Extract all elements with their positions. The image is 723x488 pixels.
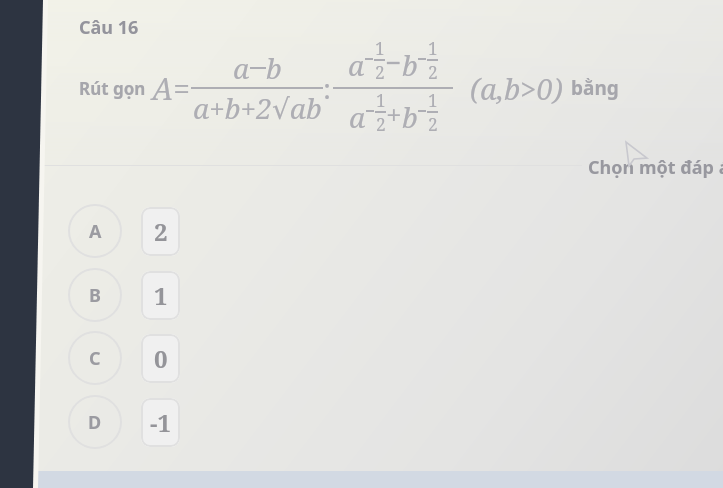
button[interactable]: B [68,268,180,322]
staticText: − [385,43,402,81]
staticText: 2 [428,60,438,84]
staticText: 2 [376,112,386,136]
staticText: B [89,283,101,308]
staticText: Câu 16 [79,15,139,40]
staticText: 1 [428,88,438,112]
staticText: b [402,98,418,136]
staticText: a [349,98,366,136]
staticText: C [89,346,101,371]
staticText: 1 [154,279,168,312]
staticText: b [402,46,418,84]
staticText: a [233,49,250,87]
staticText: Rút gọn [79,77,146,100]
staticText: 1 [428,36,438,60]
staticText: A= [152,68,190,109]
staticText: 2 [375,60,385,84]
staticText: 0 [154,342,168,375]
button[interactable]: D [68,395,180,449]
button[interactable]: C [68,331,180,385]
button[interactable]: A [68,204,180,258]
staticText: a+b+2√ab [193,89,322,127]
staticText: 2 [154,215,168,248]
staticText: 2 [428,112,438,136]
staticText: bằng [571,75,619,101]
staticText: D [88,410,102,435]
staticText: 1 [375,36,385,60]
staticText: + [386,95,402,133]
staticText: A [89,219,102,244]
staticText: -1 [150,406,171,439]
staticText: Chọn một đáp á [588,155,723,180]
staticText: a [348,46,365,84]
staticText: 1 [376,88,386,112]
staticText: : [323,69,332,107]
staticText: b [266,49,282,87]
staticText: (a,b>0) [470,69,563,108]
